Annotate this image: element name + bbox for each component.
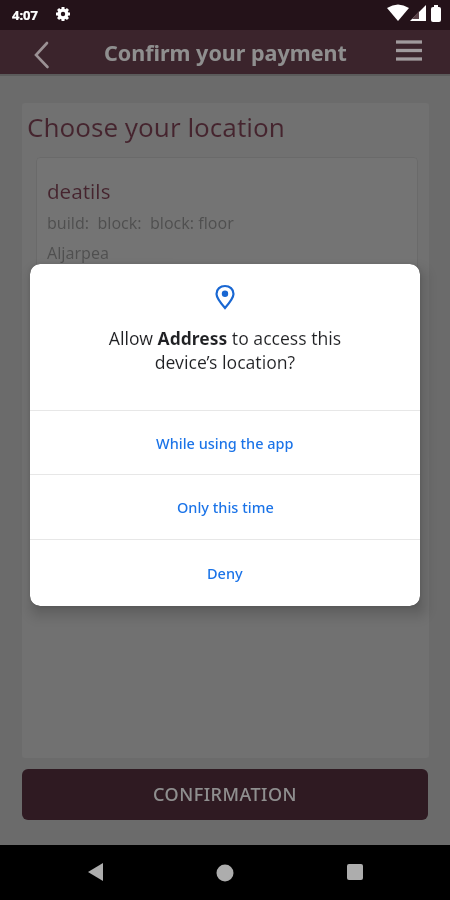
button[interactable] (24, 36, 60, 72)
staticText: Allow Address to access this device’s lo… (30, 326, 420, 374)
staticText: Choose your location (27, 109, 285, 144)
staticText: Only this time (177, 497, 274, 517)
button[interactable]: While using the app (30, 411, 420, 474)
button[interactable] (36, 157, 418, 577)
staticText: Deny (207, 563, 243, 583)
staticText: CONFIRMATION (153, 782, 298, 807)
staticText: Confirm your payment (104, 38, 347, 67)
staticText: Aljarpea (47, 242, 109, 264)
button[interactable]: Deny (30, 540, 420, 606)
button[interactable] (73, 845, 133, 900)
staticText: While using the app (156, 433, 294, 453)
button[interactable] (325, 845, 385, 900)
button[interactable] (195, 845, 255, 900)
staticText: 4:07 (12, 6, 38, 24)
button[interactable]: CONFIRMATION (22, 769, 428, 820)
button[interactable]: Only this time (30, 475, 420, 539)
button[interactable] (394, 37, 430, 67)
staticText: build: block: block: floor (47, 212, 234, 234)
staticText: deatils (47, 177, 111, 205)
